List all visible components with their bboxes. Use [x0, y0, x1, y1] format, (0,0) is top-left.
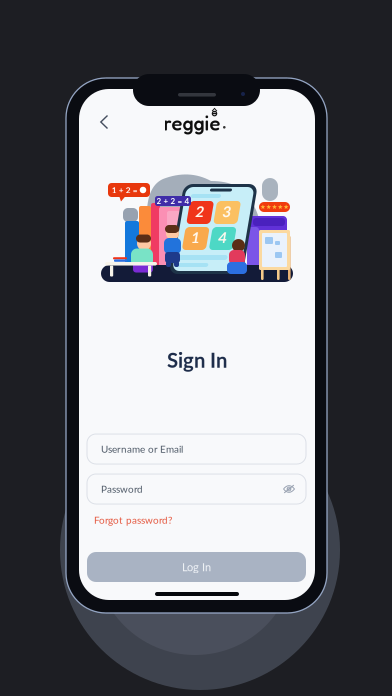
staticText: Password — [101, 483, 143, 495]
button[interactable]: Forgot password? — [79, 89, 315, 600]
staticText: reggie — [163, 111, 220, 135]
button[interactable]: Back — [79, 89, 315, 600]
staticText: Sign In — [167, 348, 227, 372]
staticText: 2 + 2 = 4 — [156, 196, 189, 206]
staticText: 4 — [227, 229, 236, 246]
button[interactable]: Log In — [79, 89, 315, 600]
staticText: Forgot password? — [94, 514, 172, 526]
staticText: Username or Email — [101, 443, 183, 455]
staticText: 1 + 2 = — [112, 185, 138, 195]
staticText: 1 — [200, 229, 209, 246]
staticText: Log In — [182, 560, 211, 573]
staticText: 3 — [227, 203, 236, 220]
staticText: 2 — [200, 203, 209, 220]
